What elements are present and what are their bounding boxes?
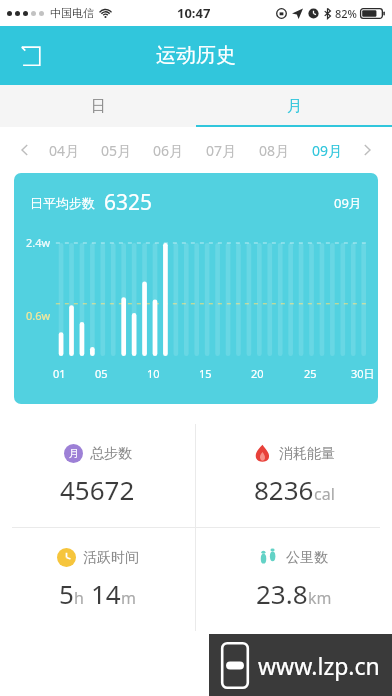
staticText: 07月 <box>206 141 237 160</box>
staticText: 23.8 <box>256 576 308 611</box>
button[interactable]: 公里数 <box>196 528 392 631</box>
staticText: 总步数 <box>90 445 132 463</box>
staticText: 45672 <box>60 472 135 507</box>
staticText: h <box>74 587 84 609</box>
staticText: 05 <box>95 366 108 381</box>
staticText: 10:47 <box>177 4 211 22</box>
button[interactable]: Previous month <box>12 137 38 163</box>
staticText: www.lzp.cn <box>258 650 380 681</box>
button[interactable]: 月 <box>196 85 392 127</box>
button[interactable]: 06月 <box>142 134 195 166</box>
staticText: 中国电信 <box>50 6 94 20</box>
staticText: 6325 <box>104 188 153 217</box>
staticText: m <box>121 587 136 609</box>
staticText: 08月 <box>259 141 290 160</box>
button[interactable]: 日 <box>0 85 196 127</box>
staticText: 月 <box>69 447 79 460</box>
button[interactable]: 08月 <box>248 134 301 166</box>
button[interactable]: Back <box>8 33 54 79</box>
staticText: 01 <box>53 366 66 381</box>
staticText: 2.4w <box>26 235 51 250</box>
staticText: 公里数 <box>286 549 328 567</box>
button[interactable]: 消耗能量 <box>196 424 392 527</box>
button[interactable]: 活跃时间 <box>0 528 195 631</box>
staticText: 06月 <box>153 141 184 160</box>
staticText: 04月 <box>49 141 80 160</box>
staticText: 82% <box>335 6 357 21</box>
staticText: 运动历史 <box>156 43 236 68</box>
staticText: cal <box>314 483 335 505</box>
button[interactable]: 09月 <box>301 134 354 166</box>
staticText: 日 <box>91 97 106 116</box>
staticText: 日平均步数 <box>30 195 95 211</box>
staticText: 14 <box>91 576 121 611</box>
staticText: 15 <box>199 366 212 381</box>
button[interactable]: Next month <box>354 137 380 163</box>
button[interactable]: 月 <box>0 424 195 527</box>
staticText: 05月 <box>101 141 132 160</box>
staticText: 20 <box>251 366 264 381</box>
staticText: 09月 <box>312 141 343 160</box>
staticText: 10 <box>147 366 160 381</box>
button[interactable]: 07月 <box>195 134 248 166</box>
staticText: 8236 <box>254 472 314 507</box>
staticText: km <box>308 587 332 609</box>
button[interactable]: 04月 <box>38 134 90 166</box>
staticText: 09月 <box>334 194 362 212</box>
button[interactable]: 05月 <box>90 134 142 166</box>
staticText: 25 <box>304 366 317 381</box>
staticText: 消耗能量 <box>279 445 335 463</box>
staticText: 0.6w <box>26 308 51 323</box>
staticText: 活跃时间 <box>83 549 139 567</box>
staticText: 月 <box>287 97 302 116</box>
staticText: 5 <box>59 576 74 611</box>
staticText: 30日 <box>351 366 375 381</box>
button[interactable]: 日平均步数 <box>14 173 378 404</box>
